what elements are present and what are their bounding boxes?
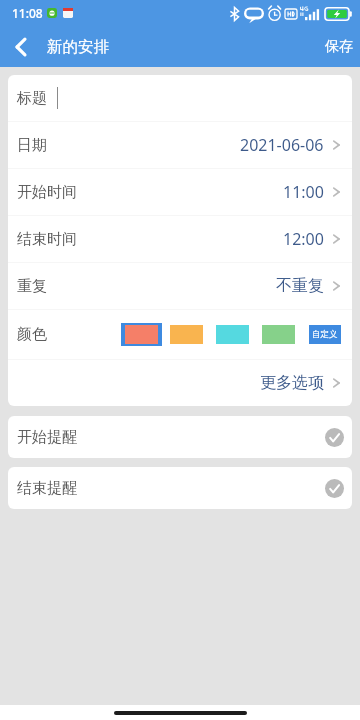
staticText: 2021-06-06 <box>240 134 324 156</box>
staticText: 重复 <box>17 277 47 296</box>
staticText: 结束提醒 <box>17 479 77 498</box>
staticText: 11:08 <box>12 5 43 21</box>
staticText: 日期 <box>17 136 47 155</box>
button[interactable]: 日期 <box>8 122 352 168</box>
button[interactable]: Back <box>0 27 42 67</box>
button[interactable]: Red colour, selected <box>121 323 162 346</box>
staticText: 开始提醒 <box>17 428 77 447</box>
staticText: 自定义 <box>312 329 338 340</box>
staticText: 保存 <box>325 38 353 56</box>
button[interactable]: 保存 <box>311 27 360 67</box>
staticText: 颜色 <box>17 325 47 344</box>
button[interactable]: 开始提醒 <box>8 416 352 458</box>
button[interactable]: 标题 <box>8 75 352 121</box>
button[interactable]: 重复 <box>8 263 352 309</box>
button[interactable]: 开始时间 <box>8 169 352 215</box>
button[interactable]: 自定义 <box>309 325 341 344</box>
staticText: 12:00 <box>283 228 324 250</box>
staticText: 更多选项 <box>260 373 324 393</box>
button[interactable]: 结束提醒 <box>8 467 352 509</box>
button[interactable]: 更多选项 <box>8 360 352 406</box>
staticText: 结束时间 <box>17 230 77 249</box>
button[interactable]: 结束时间 <box>8 216 352 262</box>
staticText: 标题 <box>17 89 47 108</box>
staticText: 不重复 <box>276 276 324 296</box>
staticText: 11:00 <box>283 181 324 203</box>
staticText: 新的安排 <box>47 37 109 57</box>
staticText: 开始时间 <box>17 183 77 202</box>
